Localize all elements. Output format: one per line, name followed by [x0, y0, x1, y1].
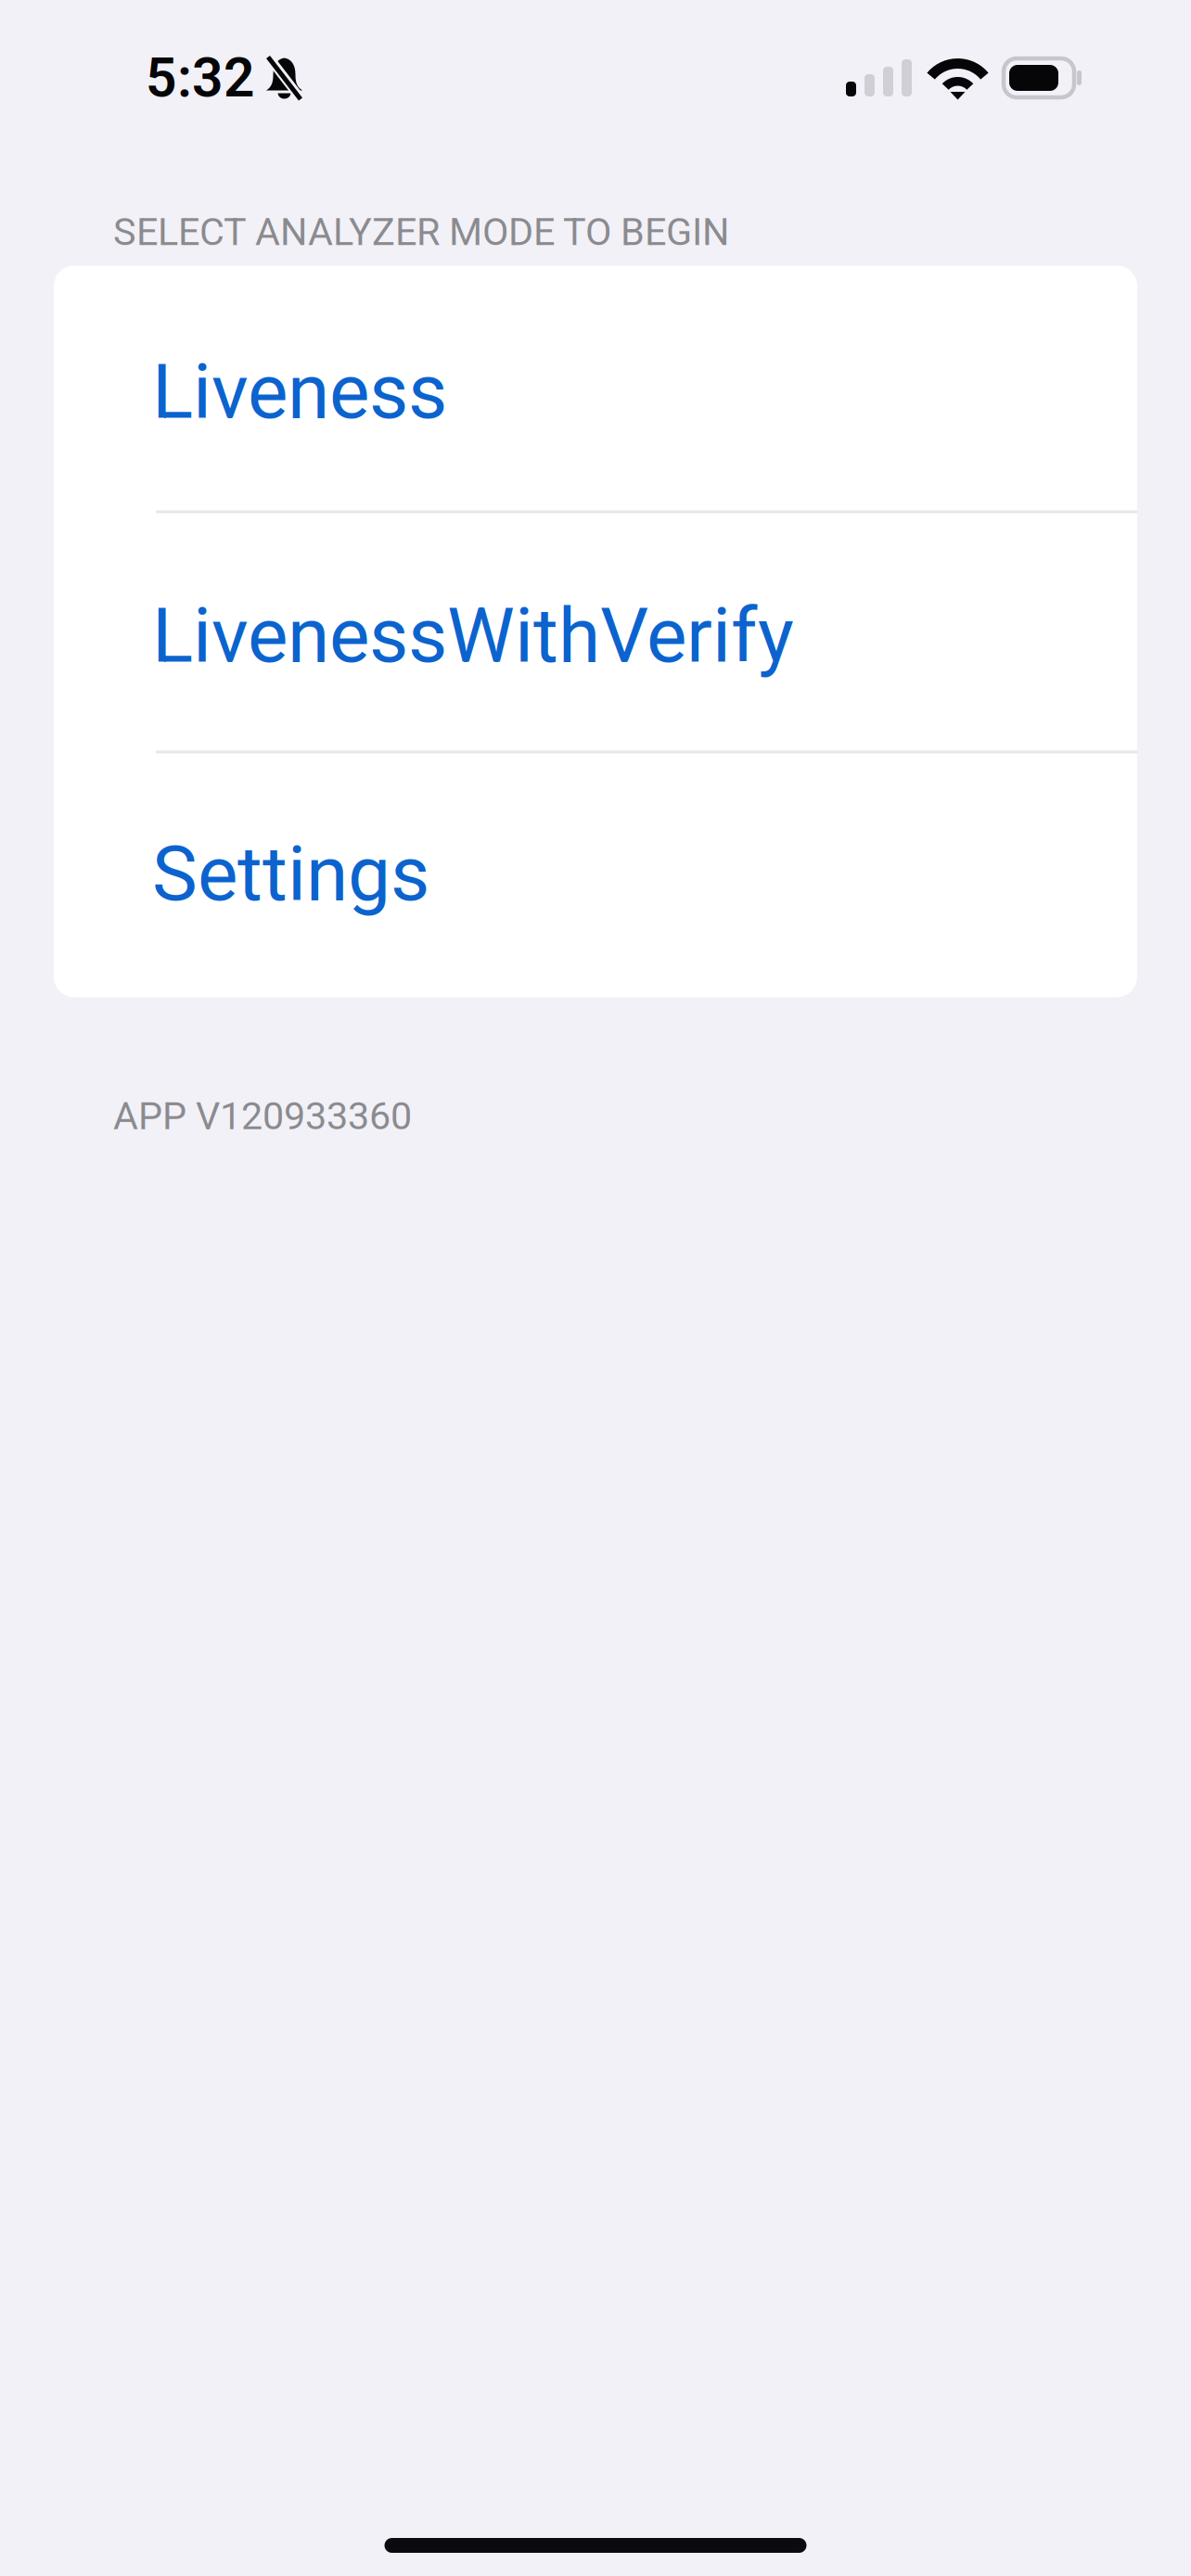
staticText: 5:32 — [146, 46, 255, 110]
button[interactable]: LivenessWithVerify — [54, 513, 1137, 753]
staticText: Settings — [152, 829, 429, 918]
staticText: SELECT ANALYZER MODE TO BEGIN — [113, 210, 729, 254]
staticText: APP V120933360 — [113, 1094, 412, 1139]
staticText: LivenessWithVerify — [152, 591, 794, 680]
staticText: Liveness — [152, 347, 447, 436]
button[interactable]: Liveness — [54, 266, 1137, 513]
button[interactable]: Settings — [54, 753, 1137, 997]
